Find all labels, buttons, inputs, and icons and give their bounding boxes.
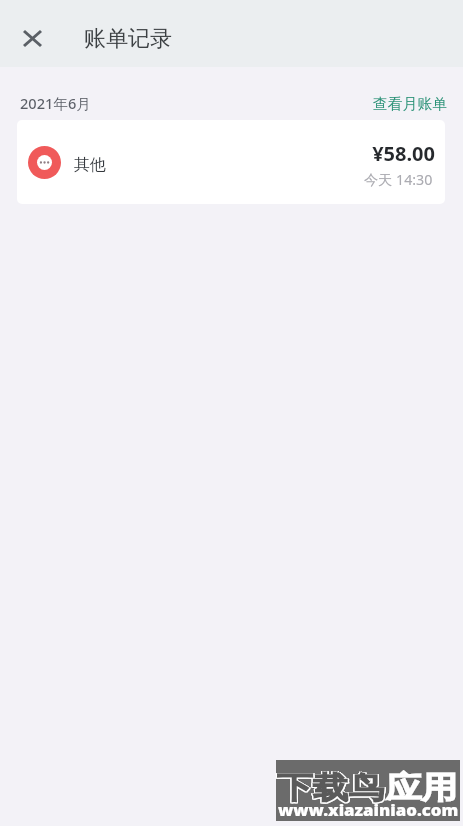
staticText: 账单记录 (84, 25, 172, 53)
staticText: ¥58.00 (372, 140, 435, 167)
staticText: 下载鸟 (276, 769, 383, 807)
button[interactable]: 查看月账单 (373, 95, 447, 114)
staticText: 查看月账单 (373, 95, 447, 114)
staticText: 下载鸟 (277, 769, 384, 807)
staticText: 下载鸟 (277, 768, 384, 806)
staticText: 下载鸟 (278, 768, 386, 806)
staticText: 2021年6月 (20, 93, 91, 113)
staticText: 下载鸟 (278, 769, 386, 807)
button[interactable]: Close (16, 22, 49, 55)
staticText: 应用 (386, 769, 457, 807)
staticText: 其他 (74, 155, 106, 175)
staticText: 下载鸟 (276, 768, 383, 806)
button[interactable]: 其他 (17, 120, 445, 204)
staticText: 下载鸟 (278, 770, 386, 808)
staticText: 今天 14:30 (364, 170, 433, 189)
staticText: www.xiazainiao.com (278, 800, 459, 821)
staticText: 下载鸟 (277, 770, 384, 808)
staticText: 下载鸟 (276, 770, 383, 808)
